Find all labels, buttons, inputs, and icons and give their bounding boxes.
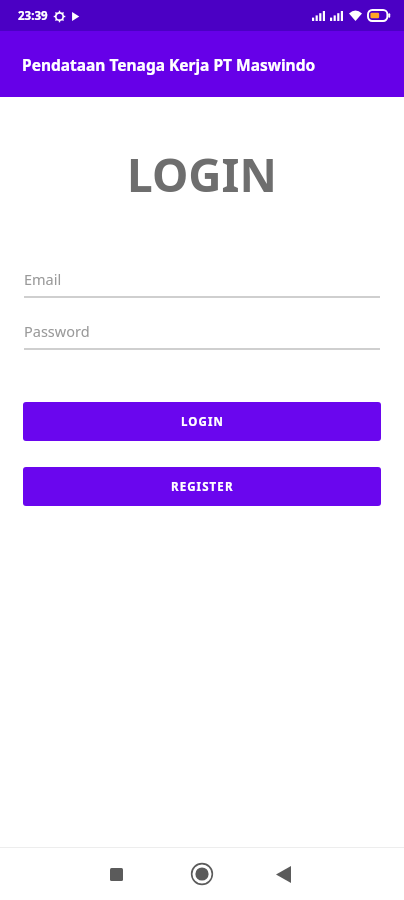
button[interactable]: LOGIN	[23, 402, 381, 441]
staticText: Pendataan Tenaga Kerja PT Maswindo	[22, 54, 316, 75]
button[interactable]: Password	[24, 321, 380, 350]
staticText: 23:39	[18, 8, 48, 24]
button[interactable]: Back	[263, 854, 303, 894]
staticText: LOGIN	[0, 143, 404, 206]
button[interactable]: Recent apps	[96, 854, 136, 894]
staticText: REGISTER	[171, 479, 234, 495]
button[interactable]: REGISTER	[23, 467, 381, 506]
staticText: Password	[24, 321, 90, 341]
button[interactable]: Email	[24, 269, 380, 298]
staticText: Email	[24, 269, 62, 289]
staticText: LOGIN	[181, 414, 224, 430]
button[interactable]: Home	[182, 854, 222, 894]
